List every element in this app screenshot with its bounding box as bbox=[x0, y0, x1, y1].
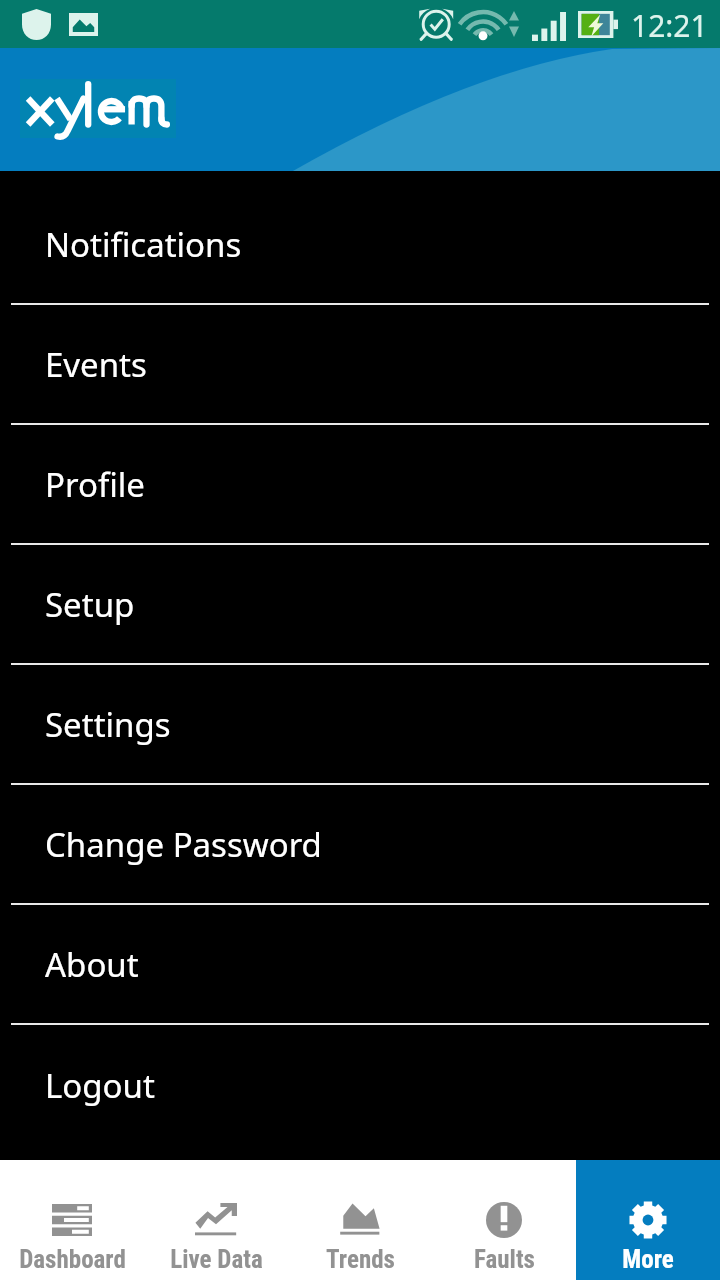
button[interactable]: Settings bbox=[0, 665, 720, 783]
button[interactable]: Setup bbox=[0, 545, 720, 663]
staticText: Change Password bbox=[45, 822, 322, 867]
staticText: Logout bbox=[45, 1063, 155, 1108]
staticText: Notifications bbox=[45, 222, 242, 267]
staticText: Settings bbox=[45, 702, 171, 747]
staticText: Setup bbox=[45, 582, 135, 627]
staticText: More bbox=[622, 1245, 674, 1274]
staticText: About bbox=[45, 942, 139, 987]
button[interactable]: Faults bbox=[432, 1160, 576, 1280]
staticText: Faults bbox=[474, 1245, 535, 1274]
other: xylem bbox=[25, 81, 170, 139]
button[interactable]: About bbox=[0, 905, 720, 1023]
button[interactable]: More bbox=[576, 1160, 720, 1280]
button[interactable]: Events bbox=[0, 305, 720, 423]
button[interactable]: Change Password bbox=[0, 785, 720, 903]
button[interactable]: Logout bbox=[0, 1025, 720, 1145]
staticText: Live Data bbox=[170, 1245, 263, 1274]
button[interactable]: Live Data bbox=[144, 1160, 288, 1280]
button[interactable]: Profile bbox=[0, 425, 720, 543]
button[interactable]: Trends bbox=[288, 1160, 432, 1280]
button[interactable]: Notifications bbox=[0, 185, 720, 303]
staticText: 12:21 bbox=[631, 5, 708, 46]
staticText: Profile bbox=[45, 462, 145, 507]
button[interactable]: Dashboard bbox=[0, 1160, 144, 1280]
staticText: Dashboard bbox=[19, 1245, 126, 1274]
staticText: Trends bbox=[326, 1245, 395, 1274]
staticText: Events bbox=[45, 342, 147, 387]
